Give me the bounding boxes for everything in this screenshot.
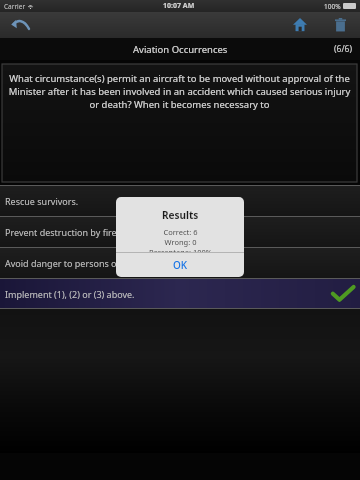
staticText: Results (162, 208, 199, 222)
button[interactable]: Prevent destruction by fire. (0, 217, 360, 247)
staticText: (6/6) (334, 43, 352, 55)
staticText: Correct: 6 Wrong: 0 Percentage: 100% (149, 227, 212, 252)
staticText: Prevent destruction by fire. (5, 226, 120, 238)
staticText: Implement (1), (2) or (3) above. (5, 288, 135, 300)
staticText: Carrier (4, 2, 26, 11)
staticText: Avoid danger to persons or property. (5, 257, 162, 269)
staticText: OK (173, 258, 188, 272)
button[interactable]: Implement (1), (2) or (3) above. (0, 279, 360, 308)
button[interactable]: OK (116, 253, 244, 277)
button[interactable]: Avoid danger to persons or property. (0, 248, 360, 278)
button[interactable]: Home (288, 13, 312, 37)
staticText: What circumstance(s) permit an aircraft … (6, 72, 353, 111)
button[interactable]: Delete (328, 13, 352, 37)
staticText: 10:07 AM (163, 1, 195, 11)
staticText: Rescue survivors. (5, 195, 79, 207)
button[interactable]: Back (6, 14, 34, 36)
staticText: Aviation Occurrences (133, 43, 228, 56)
button[interactable]: Rescue survivors. (0, 186, 360, 216)
staticText: 100% (324, 2, 341, 11)
